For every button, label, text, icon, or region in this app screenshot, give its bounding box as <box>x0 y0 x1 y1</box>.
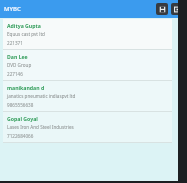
staticText: MYBC <box>4 5 21 13</box>
staticText: DVD Group <box>7 62 32 68</box>
staticText: Lases Iron And Steel Industries <box>7 124 74 130</box>
staticText: 7122684066 <box>7 133 34 139</box>
button[interactable]: Dan Lee <box>3 50 172 81</box>
staticText: janatics pneumatic indiaspvt ltd <box>7 93 76 99</box>
staticText: Equus cast pvt ltd <box>7 31 45 37</box>
staticText: 9865556638 <box>7 102 34 108</box>
staticText: Gopal Goyal <box>7 115 38 122</box>
staticText: Aditya Gupta <box>7 22 41 29</box>
button[interactable]: Save <box>156 3 168 15</box>
button[interactable]: Gopal Goyal <box>3 112 172 142</box>
button[interactable]: Camera <box>171 3 183 15</box>
button[interactable]: Aditya Gupta <box>3 19 172 50</box>
staticText: 221371 <box>7 40 23 46</box>
button[interactable]: manikandan d <box>3 81 172 112</box>
staticText: Dan Lee <box>7 53 28 60</box>
staticText: manikandan d <box>7 84 45 91</box>
staticText: 227146 <box>7 71 23 77</box>
